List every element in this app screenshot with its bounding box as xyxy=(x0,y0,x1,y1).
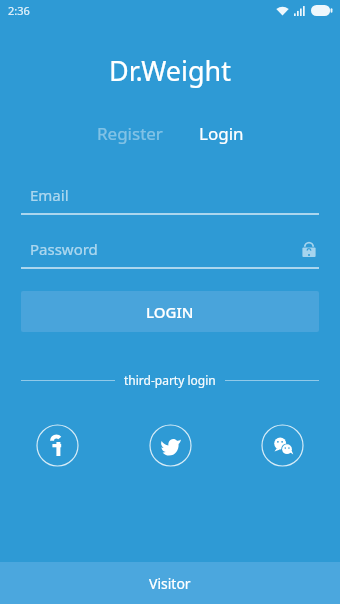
button[interactable]: WeChat login xyxy=(261,424,304,467)
staticText: third-party login xyxy=(124,372,216,388)
button[interactable]: Visitor xyxy=(0,562,340,604)
button[interactable]: Password xyxy=(21,236,319,269)
staticText: Dr.Weight xyxy=(0,52,340,89)
staticText: Password xyxy=(30,239,98,259)
staticText: Email xyxy=(30,185,69,205)
button[interactable]: Facebook login xyxy=(36,424,79,467)
staticText: 2:36 xyxy=(8,3,30,18)
staticText: Login xyxy=(199,122,244,145)
staticText: Visitor xyxy=(149,574,191,593)
button[interactable]: Email xyxy=(21,182,319,215)
button[interactable]: LOGIN xyxy=(21,291,319,332)
staticText: Register xyxy=(97,122,163,145)
button[interactable]: Forgot password xyxy=(299,239,319,259)
staticText: LOGIN xyxy=(146,302,194,322)
button[interactable]: Twitter login xyxy=(149,424,192,467)
button[interactable]: Login xyxy=(191,117,252,150)
button[interactable]: Register xyxy=(89,117,171,150)
